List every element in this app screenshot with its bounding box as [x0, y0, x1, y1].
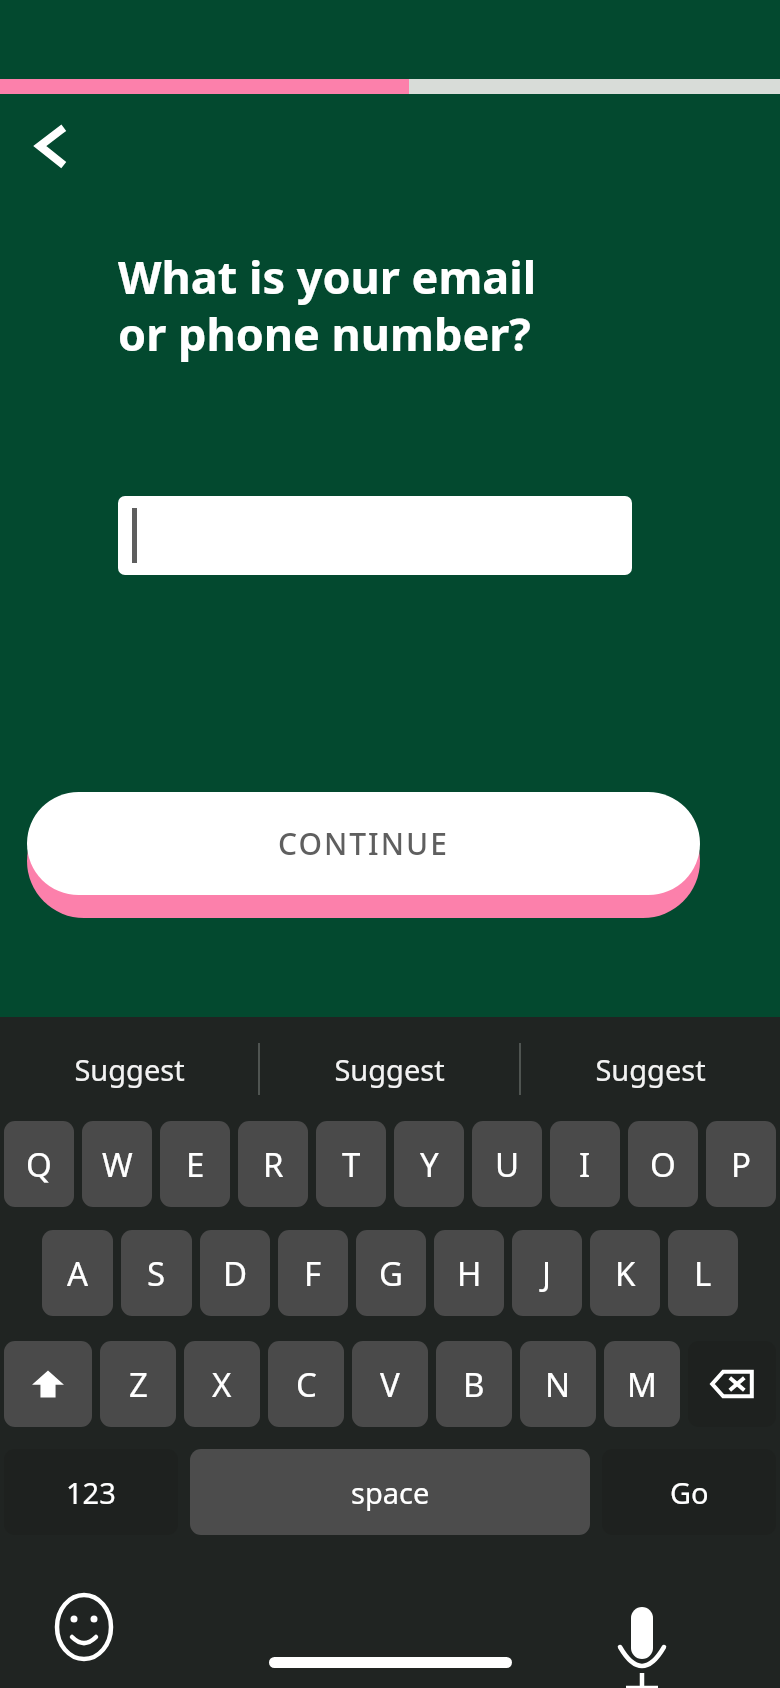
staticText: W	[102, 1142, 133, 1187]
button[interactable]: 123	[4, 1449, 178, 1535]
staticText: space	[351, 1473, 430, 1512]
button[interactable]: Email or phone number input	[118, 496, 632, 575]
button[interactable]: H	[434, 1230, 504, 1316]
button[interactable]: CONTINUE	[27, 792, 700, 895]
button[interactable]: Suggest	[260, 1017, 519, 1121]
staticText: I	[579, 1142, 591, 1187]
staticText: Go	[670, 1473, 709, 1512]
button[interactable]: J	[512, 1230, 582, 1316]
staticText: V	[380, 1362, 400, 1407]
staticText: S	[147, 1251, 166, 1296]
button[interactable]: Backspace	[688, 1341, 776, 1427]
staticText: Y	[420, 1142, 439, 1187]
button[interactable]: R	[238, 1121, 308, 1207]
button[interactable]: Suggest	[521, 1017, 780, 1121]
button[interactable]: U	[472, 1121, 542, 1207]
button[interactable]: Voice input	[610, 1589, 674, 1653]
staticText: A	[67, 1251, 89, 1296]
staticText: O	[650, 1142, 676, 1187]
button[interactable]: F	[278, 1230, 348, 1316]
button[interactable]: N	[520, 1341, 596, 1427]
button[interactable]: O	[628, 1121, 698, 1207]
button[interactable]: Suggest	[0, 1017, 258, 1121]
staticText: R	[263, 1142, 284, 1187]
button[interactable]: space	[190, 1449, 590, 1535]
button[interactable]: L	[668, 1230, 738, 1316]
staticText: H	[457, 1251, 482, 1296]
staticText: M	[627, 1362, 657, 1407]
button[interactable]: V	[352, 1341, 428, 1427]
staticText: U	[495, 1142, 520, 1187]
staticText: What is your email or phone number?	[118, 246, 678, 364]
staticText: P	[731, 1142, 751, 1187]
staticText: J	[542, 1251, 552, 1296]
staticText: CONTINUE	[278, 823, 449, 864]
staticText: Q	[26, 1142, 52, 1187]
staticText: T	[342, 1142, 361, 1187]
button[interactable]: P	[706, 1121, 776, 1207]
staticText: C	[296, 1362, 317, 1407]
staticText: G	[379, 1251, 404, 1296]
staticText: Suggest	[595, 1050, 706, 1089]
staticText: N	[545, 1362, 571, 1407]
button[interactable]: A	[42, 1230, 113, 1316]
staticText: B	[463, 1362, 485, 1407]
button[interactable]: Go	[602, 1449, 776, 1535]
staticText: Suggest	[74, 1050, 185, 1089]
button[interactable]: T	[316, 1121, 386, 1207]
staticText: D	[223, 1251, 248, 1296]
staticText: Z	[129, 1362, 148, 1407]
button[interactable]: X	[184, 1341, 260, 1427]
button[interactable]: Emoji	[52, 1595, 116, 1659]
staticText: Suggest	[334, 1050, 445, 1089]
button[interactable]: S	[121, 1230, 192, 1316]
button[interactable]: C	[268, 1341, 344, 1427]
button[interactable]: M	[604, 1341, 680, 1427]
staticText: K	[615, 1251, 636, 1296]
button[interactable]: E	[160, 1121, 230, 1207]
button[interactable]: D	[200, 1230, 270, 1316]
button[interactable]: Z	[100, 1341, 176, 1427]
button[interactable]: W	[82, 1121, 152, 1207]
button[interactable]: G	[356, 1230, 426, 1316]
button[interactable]: Q	[4, 1121, 74, 1207]
staticText: 123	[66, 1473, 116, 1512]
staticText: F	[304, 1251, 322, 1296]
staticText: E	[186, 1142, 205, 1187]
button[interactable]: Y	[394, 1121, 464, 1207]
button[interactable]: K	[590, 1230, 660, 1316]
button[interactable]: I	[550, 1121, 620, 1207]
staticText: L	[694, 1251, 712, 1296]
button[interactable]: Back	[16, 110, 88, 182]
button[interactable]: B	[436, 1341, 512, 1427]
staticText: X	[212, 1362, 232, 1407]
button[interactable]: Shift	[4, 1341, 92, 1427]
